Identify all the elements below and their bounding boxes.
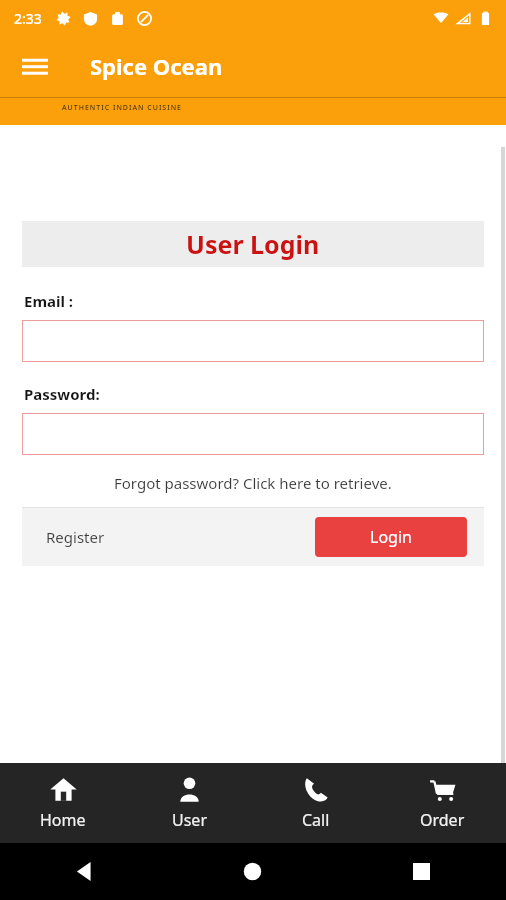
staticText: User	[172, 809, 207, 831]
staticText: Forgot password? Click here to retrieve.	[114, 473, 392, 493]
staticText: Spice Ocean	[90, 51, 223, 81]
button[interactable]: Home	[0, 763, 126, 843]
staticText: AUTHENTIC INDIAN CUISINE	[62, 103, 183, 113]
button[interactable]: Login	[315, 517, 467, 557]
staticText: Login	[370, 526, 412, 548]
button[interactable]: Register	[40, 521, 111, 553]
staticText: Order	[420, 809, 465, 831]
button[interactable]	[22, 413, 484, 455]
button[interactable]: Home	[168, 843, 337, 900]
button[interactable]: Order	[379, 763, 506, 843]
staticText: Call	[302, 809, 330, 831]
staticText: Register	[46, 527, 105, 547]
button[interactable]: User	[126, 763, 252, 843]
button[interactable]: Open navigation menu	[12, 43, 58, 89]
staticText: 2:33	[14, 9, 42, 28]
staticText: Email :	[24, 291, 74, 311]
button[interactable]	[22, 320, 484, 362]
button[interactable]: Recent apps	[337, 843, 506, 900]
button[interactable]: Back	[0, 843, 168, 900]
staticText: User Login	[186, 227, 320, 261]
button[interactable]: Call	[252, 763, 379, 843]
staticText: Password:	[24, 384, 100, 404]
button[interactable]: Forgot password? Click here to retrieve.	[22, 473, 484, 493]
staticText: Home	[40, 809, 86, 831]
